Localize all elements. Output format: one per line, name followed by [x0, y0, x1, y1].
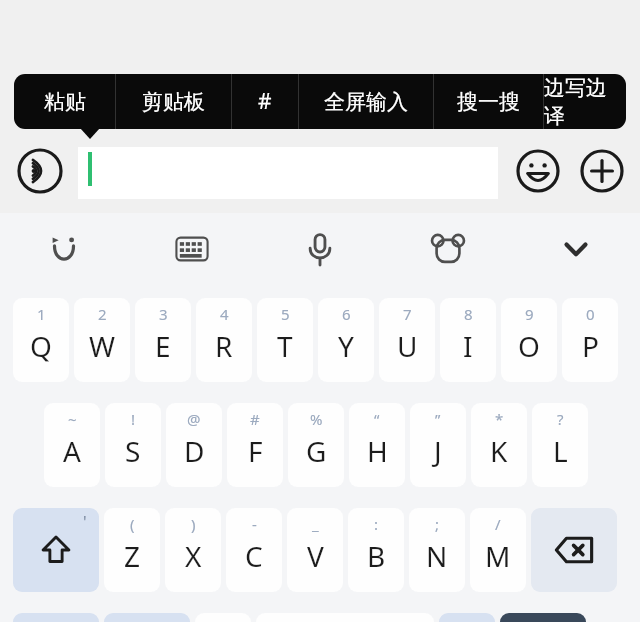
staticText: 边写边译 [544, 75, 626, 129]
staticText: W [89, 327, 116, 365]
staticText: I [463, 327, 473, 365]
button[interactable]: # [232, 74, 298, 129]
button[interactable]: 8 [440, 298, 496, 382]
button[interactable]: Hide keyboard [512, 213, 640, 285]
button[interactable] [104, 613, 190, 622]
staticText: 剪贴板 [142, 89, 205, 115]
staticText: P [582, 327, 599, 365]
staticText: 9 [525, 304, 534, 324]
staticText: % [310, 409, 323, 429]
staticText: K [490, 432, 508, 470]
button[interactable]: 3 [135, 298, 191, 382]
button[interactable]: 0 [562, 298, 618, 382]
button[interactable]: 搜一搜 [434, 74, 543, 129]
staticText: Z [124, 537, 141, 575]
staticText: : [374, 514, 379, 534]
staticText: 7 [403, 304, 412, 324]
staticText: ( [130, 514, 135, 534]
button[interactable]: / [470, 508, 526, 592]
button[interactable] [500, 613, 586, 622]
staticText: U [397, 327, 418, 365]
staticText: Q [30, 327, 52, 365]
button[interactable]: 1 [13, 298, 69, 382]
button[interactable]: ? [532, 403, 588, 487]
staticText: C [245, 537, 263, 575]
staticText: S [125, 432, 141, 470]
staticText: ? [557, 409, 564, 429]
button[interactable]: 剪贴板 [116, 74, 231, 129]
button[interactable]: Emoji [512, 145, 564, 197]
button[interactable]: * [471, 403, 527, 487]
button[interactable]: @ [166, 403, 222, 487]
staticText: L [553, 432, 568, 470]
staticText: E [155, 327, 171, 365]
button[interactable]: ” [410, 403, 466, 487]
staticText: N [426, 537, 448, 575]
staticText: ) [191, 514, 196, 534]
staticText: A [63, 432, 81, 470]
staticText: X [185, 537, 202, 575]
button[interactable]: 粘贴 [14, 74, 115, 129]
staticText: 6 [342, 304, 351, 324]
staticText: ~ [68, 409, 77, 429]
staticText: # [250, 409, 260, 429]
button[interactable]: ! [105, 403, 161, 487]
button[interactable]: 7 [379, 298, 435, 382]
staticText: 4 [220, 304, 229, 324]
staticText: 搜一搜 [457, 89, 520, 115]
button[interactable]: : [348, 508, 404, 592]
staticText: * [495, 409, 504, 429]
staticText: “ [374, 409, 380, 429]
staticText: O [518, 327, 540, 365]
button[interactable]: 5 [257, 298, 313, 382]
button[interactable]: ; [409, 508, 465, 592]
button[interactable]: Switch keyboard [128, 213, 256, 285]
button[interactable]: 9 [501, 298, 557, 382]
button[interactable]: Backspace [531, 508, 617, 592]
staticText: 全屏输入 [324, 89, 408, 115]
staticText: 2 [98, 304, 107, 324]
staticText: G [306, 432, 327, 470]
staticText: 粘贴 [44, 89, 86, 115]
button[interactable]: Shift [13, 508, 99, 592]
staticText: V [307, 537, 324, 575]
staticText: @ [187, 409, 201, 429]
button[interactable]: - [226, 508, 282, 592]
staticText: 1 [37, 304, 46, 324]
button[interactable]: Emoticons [0, 213, 128, 285]
staticText: 5 [281, 304, 290, 324]
button[interactable]: Voice input [256, 213, 384, 285]
staticText: T [277, 327, 293, 365]
button[interactable]: 边写边译 [544, 74, 626, 129]
staticText: 3 [159, 304, 168, 324]
staticText: ' [83, 511, 87, 533]
button[interactable]: Add [576, 145, 628, 197]
button[interactable]: “ [349, 403, 405, 487]
staticText: / [495, 514, 501, 534]
staticText: - [252, 514, 257, 534]
button[interactable]: ) [165, 508, 221, 592]
button[interactable]: 全屏输入 [299, 74, 433, 129]
staticText: # [258, 87, 272, 116]
button[interactable] [78, 147, 498, 199]
button[interactable]: ~ [44, 403, 100, 487]
button[interactable]: 4 [196, 298, 252, 382]
staticText: ! [131, 409, 136, 429]
staticText: 8 [464, 304, 473, 324]
button[interactable] [439, 613, 495, 622]
staticText: R [215, 327, 233, 365]
button[interactable]: _ [287, 508, 343, 592]
staticText: ” [435, 409, 441, 429]
button[interactable]: % [288, 403, 344, 487]
button[interactable]: # [227, 403, 283, 487]
button[interactable] [13, 613, 99, 622]
button[interactable]: 6 [318, 298, 374, 382]
button[interactable]: Voice input [14, 145, 66, 197]
button[interactable]: Baidu input [384, 213, 512, 285]
staticText: H [367, 432, 388, 470]
button[interactable]: 2 [74, 298, 130, 382]
button[interactable]: ( [104, 508, 160, 592]
staticText: ; [435, 514, 440, 534]
